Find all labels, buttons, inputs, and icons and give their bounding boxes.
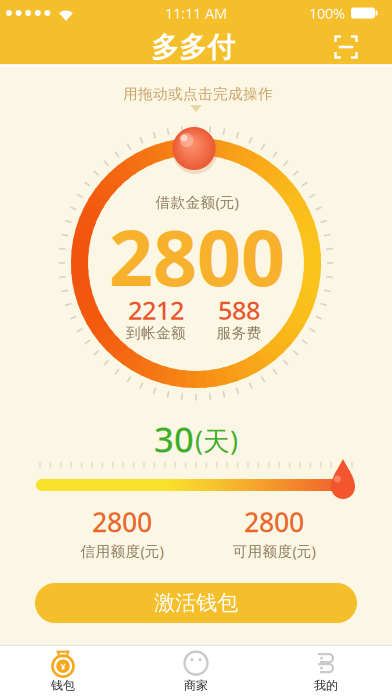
staticText: 到帐金额 <box>126 324 186 342</box>
staticText: 借款金额(元) <box>155 192 238 212</box>
staticText: 588 <box>218 293 260 327</box>
staticText: ¥ <box>60 660 65 672</box>
staticText: 可用额度(元) <box>232 541 315 561</box>
staticText: 信用额度(元) <box>80 541 163 561</box>
staticText: 2212 <box>128 293 184 327</box>
staticText: 2800 <box>109 205 285 307</box>
button[interactable]: 商家 <box>141 646 251 696</box>
staticText: 30 <box>154 416 194 462</box>
staticText: 用拖动或点击完成操作 <box>123 85 273 103</box>
staticText: 服务费 <box>216 324 261 342</box>
staticText: 2800 <box>92 504 152 540</box>
staticText: (天) <box>195 423 238 458</box>
staticText: 2800 <box>244 504 304 540</box>
button[interactable]: 激活钱包 <box>35 583 357 623</box>
staticText: 我的 <box>314 678 338 693</box>
button[interactable]: ¥ <box>8 646 118 696</box>
staticText: 100% <box>309 3 345 23</box>
staticText: 钱包 <box>51 678 75 693</box>
staticText: 商家 <box>184 678 208 693</box>
staticText: 多多付 <box>151 30 235 65</box>
staticText: 激活钱包 <box>154 590 238 616</box>
staticText: 11:11 AM <box>165 3 227 23</box>
button[interactable]: 我的 <box>271 646 381 696</box>
button[interactable]: Scan <box>331 32 361 62</box>
